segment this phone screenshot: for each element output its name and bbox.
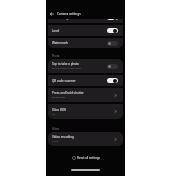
button[interactable]: Turn off — [107, 28, 118, 33]
staticText: Tap the screen to take photo — [52, 67, 82, 70]
staticText: Assistive light — [52, 16, 72, 20]
staticText: H.264 — [52, 140, 58, 143]
staticText: Video encoding — [52, 135, 74, 139]
button[interactable]: Level — [48, 25, 123, 36]
button[interactable]: Back — [47, 9, 56, 18]
button[interactable]: Turn off — [107, 15, 118, 20]
button[interactable]: Assistive light — [48, 12, 123, 23]
button[interactable]: Turn on — [107, 64, 118, 69]
staticText: Video — [52, 127, 59, 131]
staticText: Ultra HDR — [52, 108, 66, 112]
staticText: QR code scanner — [52, 79, 76, 83]
button[interactable]: Watermark — [48, 38, 123, 48]
button[interactable]: Turn on — [107, 41, 118, 46]
staticText: Tap to take a photo — [52, 62, 80, 66]
button[interactable]: Video encoding — [48, 132, 123, 146]
button[interactable]: Press and hold shutter — [48, 88, 123, 102]
staticText: Watermark — [52, 41, 68, 45]
staticText: Reset all settings — [77, 156, 100, 160]
button[interactable]: Open — [113, 93, 118, 98]
button[interactable]: Turn off — [107, 78, 118, 83]
button[interactable]: Open — [113, 109, 118, 114]
button[interactable]: Open — [113, 137, 118, 142]
button[interactable]: Ultra HDR — [48, 104, 123, 119]
button[interactable]: Reset all settings — [46, 151, 125, 164]
staticText: On — [52, 113, 56, 116]
staticText: Press and hold shutter — [52, 91, 84, 95]
staticText: Camera settings — [57, 12, 81, 16]
staticText: Photo — [52, 54, 60, 58]
button[interactable]: Tap to take a photo — [48, 59, 123, 73]
staticText: Record video — [52, 96, 66, 99]
staticText: Level — [52, 29, 60, 33]
button[interactable]: QR code scanner — [48, 75, 123, 86]
